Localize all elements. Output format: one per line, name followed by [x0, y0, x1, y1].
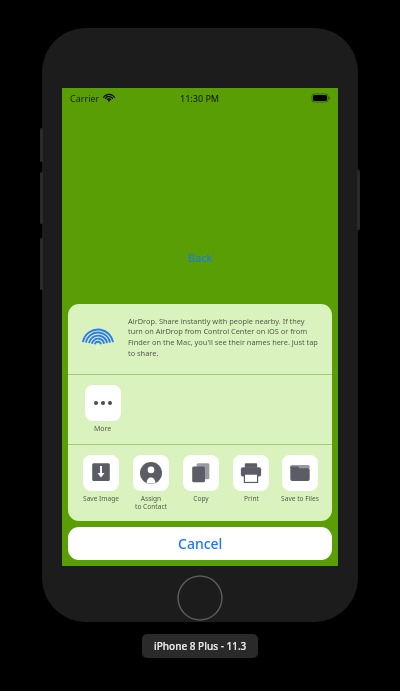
staticText: 11:30 PM — [180, 92, 220, 104]
staticText: Save Image — [83, 494, 119, 503]
button[interactable]: Home — [177, 575, 223, 621]
button[interactable]: Print — [226, 455, 276, 503]
button[interactable]: Assign to Contact — [126, 455, 176, 511]
button[interactable]: Copy — [176, 455, 226, 503]
staticText: Carrier — [70, 92, 100, 104]
staticText: More — [94, 424, 112, 434]
staticText: Print — [244, 494, 259, 503]
button[interactable]: Back — [178, 246, 223, 269]
button[interactable]: Cancel — [68, 527, 332, 560]
staticText: Copy — [193, 494, 209, 503]
staticText: Save to Files — [281, 494, 319, 503]
staticText: Back — [188, 250, 213, 265]
button[interactable]: More — [80, 385, 126, 434]
staticText: iPhone 8 Plus - 11.3 — [154, 639, 247, 653]
button[interactable]: AirDrop. Share instantly with people nea… — [68, 304, 332, 374]
staticText: Assign to Contact — [135, 494, 167, 511]
button[interactable]: Save Image — [76, 455, 126, 503]
button[interactable]: Save to Files — [276, 455, 324, 503]
staticText: Cancel — [178, 534, 223, 553]
staticText: AirDrop. Share instantly with people nea… — [128, 316, 320, 358]
